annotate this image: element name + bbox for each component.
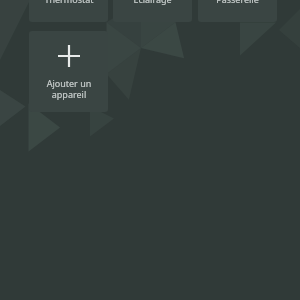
button[interactable]: Eclairage	[113, 0, 192, 22]
staticText: Passerelle	[216, 0, 259, 5]
button[interactable]: Ajouter un appareil	[29, 31, 108, 112]
staticText: Ajouter un appareil	[34, 77, 104, 100]
staticText: Eclairage	[133, 0, 172, 5]
staticText: Thermostat	[44, 0, 94, 5]
button[interactable]: Passerelle	[198, 0, 277, 22]
button[interactable]: Thermostat	[29, 0, 108, 22]
